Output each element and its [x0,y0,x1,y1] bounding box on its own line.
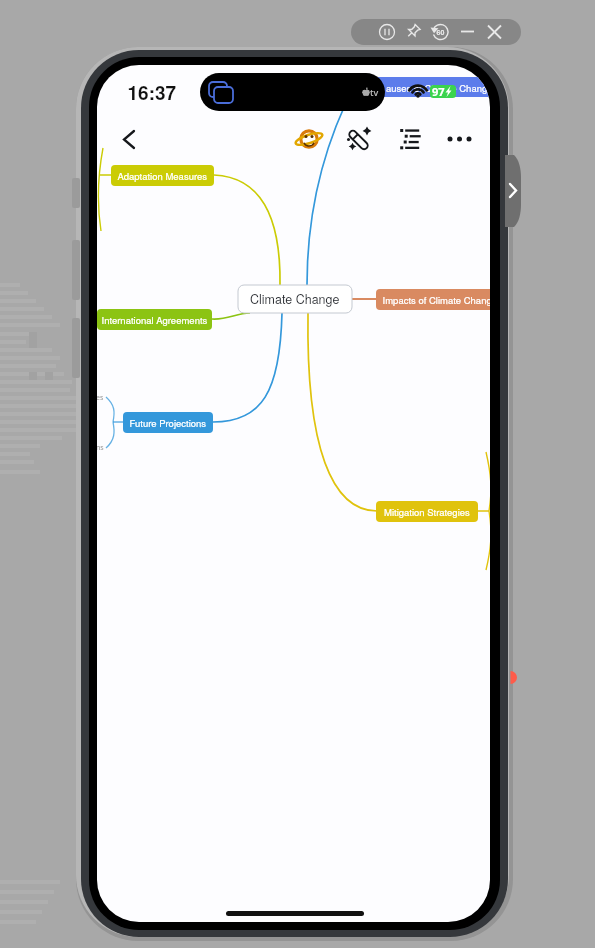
button[interactable]: Close [494,19,522,45]
button[interactable]: Pin [404,19,434,45]
button[interactable]: Pause recording [368,19,404,45]
button[interactable]: AI magic [344,124,376,156]
button[interactable]: Climate Change [238,285,352,313]
button[interactable]: Future Projections [123,412,213,433]
button[interactable]: More options [444,124,476,156]
button[interactable]: Back [115,125,145,155]
button[interactable]: Outline [395,124,427,156]
button[interactable]: Minimize [466,19,494,45]
button[interactable]: Mitigation Strategies [376,501,478,522]
button[interactable]: Adaptation Measures [111,165,214,186]
button[interactable]: Expand panel [503,157,517,223]
button[interactable]: International Agreements [97,309,212,330]
button[interactable]: Assistant [294,124,326,156]
button[interactable]: Rewind 60 seconds [434,19,466,45]
button[interactable]: Impacts of Climate Change [375,289,491,310]
